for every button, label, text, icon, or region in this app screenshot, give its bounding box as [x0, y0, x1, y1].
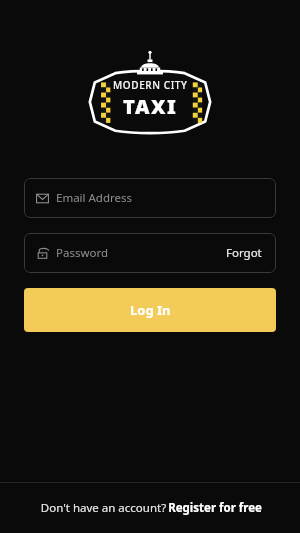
staticText: Password — [56, 245, 109, 261]
staticText: Forgot — [226, 245, 262, 261]
button[interactable]: Email — [24, 178, 276, 218]
button[interactable]: Password — [24, 233, 276, 273]
button[interactable]: Don't have an account? — [0, 483, 300, 533]
staticText: TAXI — [123, 93, 178, 120]
button[interactable]: Forgot — [224, 241, 264, 265]
staticText: Email Address — [56, 190, 133, 206]
other: Email — [36, 192, 49, 205]
staticText: Don't have an account? — [39, 500, 168, 516]
staticText: Register for free — [168, 500, 262, 516]
button[interactable]: Log In — [24, 288, 276, 332]
other: Password — [36, 247, 49, 260]
staticText: Log In — [130, 301, 171, 319]
staticText: MODERN CITY — [113, 78, 188, 92]
